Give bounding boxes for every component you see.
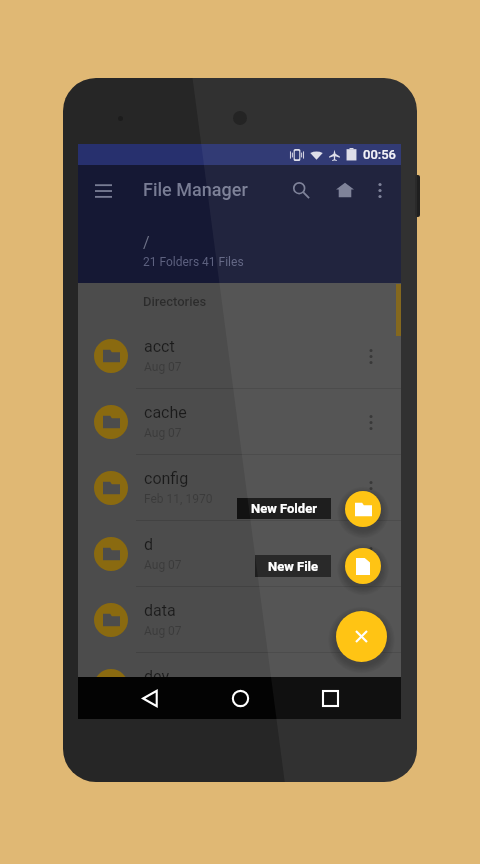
staticText: Aug 07 (144, 558, 182, 572)
button[interactable]: Item options (355, 663, 386, 709)
button[interactable]: Search (279, 168, 323, 212)
staticText: New Folder (251, 501, 317, 516)
button[interactable]: New File (345, 548, 381, 584)
button[interactable]: Close menu (336, 611, 387, 662)
button[interactable]: New Folder (345, 491, 381, 527)
staticText: / (143, 233, 150, 252)
staticText: Aug 07 (144, 624, 182, 638)
staticText: Aug 07 (144, 426, 182, 440)
button[interactable]: cache (78, 389, 401, 455)
button[interactable]: config (78, 455, 401, 521)
button[interactable]: data (78, 587, 401, 653)
button[interactable]: New Folder (237, 498, 331, 519)
staticText: New File (268, 559, 319, 574)
staticText: Directories (143, 294, 207, 309)
staticText: 21 Folders 41 Files (143, 255, 244, 269)
staticText: Feb 11, 1970 (144, 492, 213, 506)
button[interactable]: Item options (355, 597, 386, 643)
button[interactable]: New File (255, 555, 331, 577)
staticText: dev (144, 667, 170, 686)
button[interactable]: d (78, 521, 401, 587)
button[interactable]: Item options (355, 399, 386, 445)
staticText: Aug 07 (144, 360, 182, 374)
staticText: config (144, 469, 189, 488)
button[interactable]: Recents (306, 677, 354, 719)
staticText: Aug 07 (144, 690, 182, 704)
button[interactable]: acct (78, 323, 401, 389)
button[interactable]: Item options (355, 333, 386, 379)
button[interactable]: Item options (355, 531, 386, 577)
staticText: data (144, 601, 176, 620)
button[interactable]: dev (78, 653, 401, 719)
button[interactable]: Menu (80, 167, 127, 214)
button[interactable]: More options (362, 172, 398, 208)
staticText: acct (144, 337, 175, 356)
button[interactable]: Back (126, 677, 174, 719)
staticText: File Manager (143, 179, 248, 200)
staticText: d (144, 535, 154, 554)
staticText: cache (144, 403, 187, 422)
staticText: 00:56 (363, 147, 397, 162)
button[interactable]: Item options (355, 465, 386, 511)
button[interactable]: Home (216, 677, 264, 719)
button[interactable]: Home (323, 168, 367, 212)
